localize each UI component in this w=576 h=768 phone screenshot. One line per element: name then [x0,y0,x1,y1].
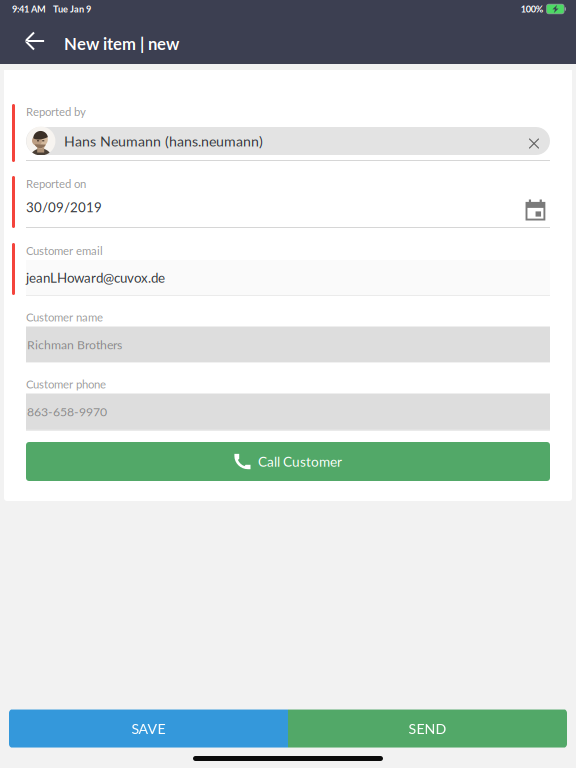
staticText: Reported by [26,105,86,118]
button[interactable]: Clear reported by [518,125,550,157]
staticText: SEND [408,720,446,737]
staticText: New item | new [64,33,179,53]
staticText: Hans Neumann (hans.neumann) [64,132,263,149]
staticText: 863-658-9970 [27,404,107,419]
staticText: Call Customer [258,453,342,470]
staticText: Customer phone [26,377,106,391]
button[interactable]: Choose date [521,189,550,225]
button[interactable]: Call Customer [26,442,550,481]
staticText: Customer name [26,310,103,324]
staticText: jeanLHoward@cuvox.de [26,269,165,285]
button[interactable]: SAVE [9,709,288,747]
staticText: SAVE [131,720,165,737]
button[interactable]: Back [13,18,57,64]
staticText: Tue Jan 9 [53,3,91,14]
staticText: 30/09/2019 [26,199,102,215]
staticText: Richman Brothers [27,337,122,352]
button[interactable]: SEND [288,709,567,747]
staticText: Customer email [26,244,103,257]
staticText: 9:41 AM [12,3,46,14]
staticText: Reported on [26,177,86,190]
staticText: 100% [521,3,544,14]
